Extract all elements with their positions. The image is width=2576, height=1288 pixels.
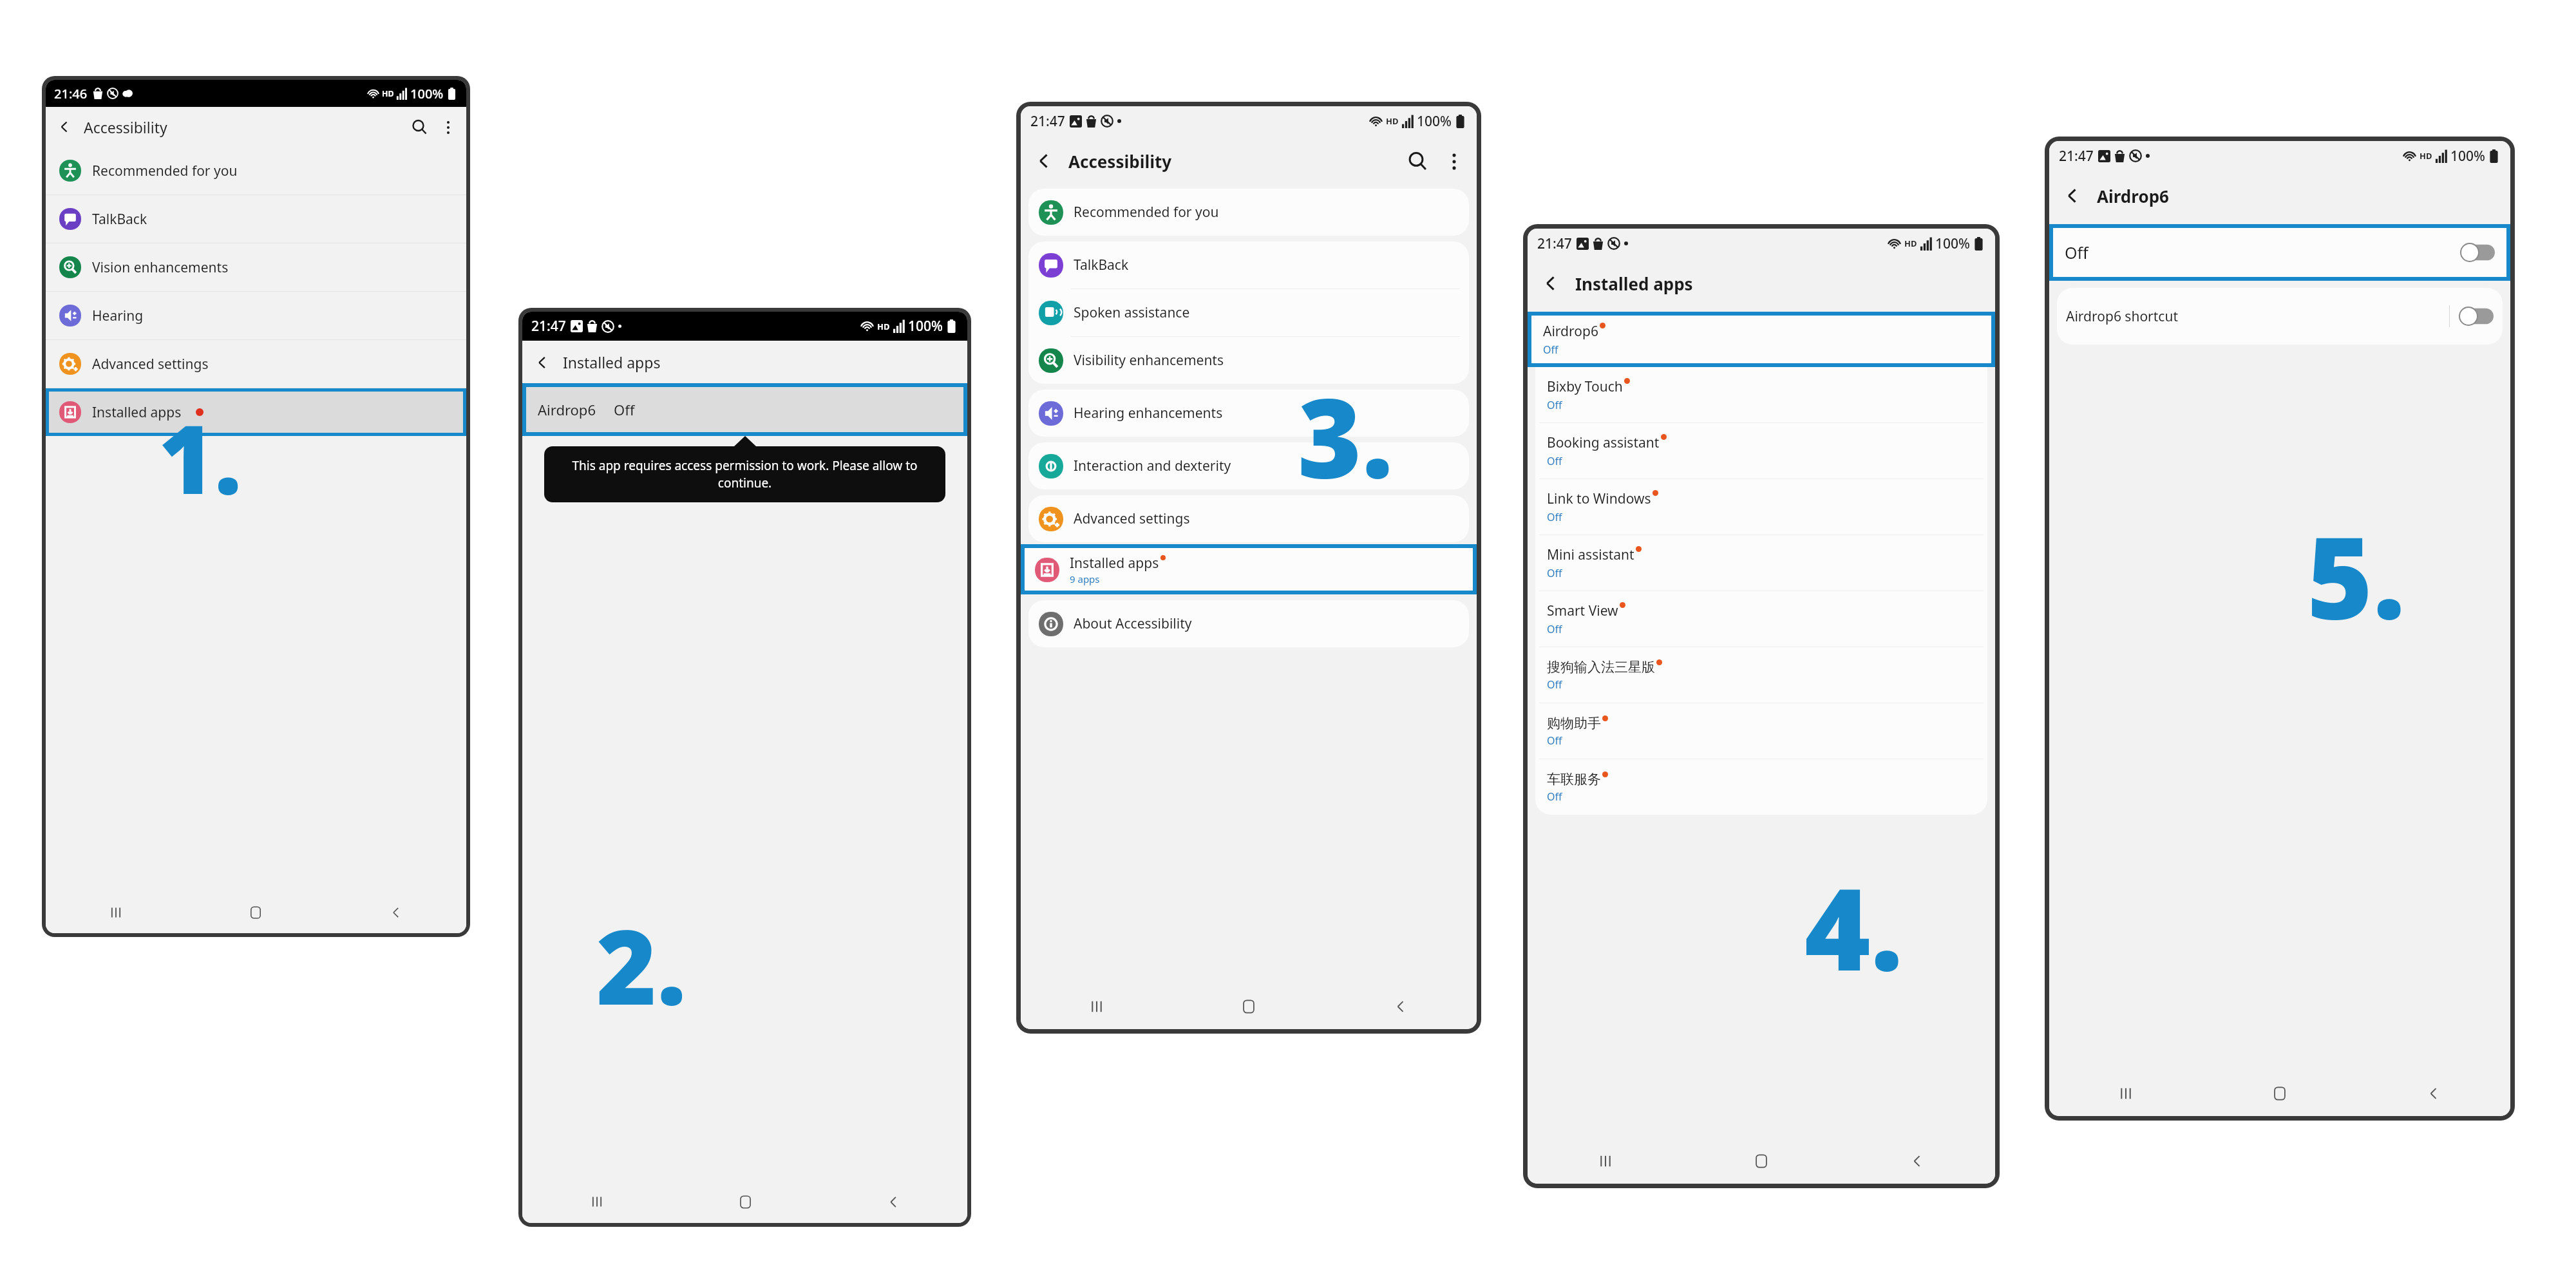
staticText: Off: [1543, 343, 1558, 357]
button[interactable]: Home: [1173, 984, 1325, 1029]
button[interactable]: More options: [1439, 146, 1469, 176]
button[interactable]: 车联服务: [1535, 759, 1987, 815]
button[interactable]: Recents: [2049, 1071, 2202, 1116]
button[interactable]: Recommended for you: [46, 147, 466, 194]
staticText: 100%: [1935, 234, 1970, 253]
button[interactable]: Airdrop6: [1531, 316, 1991, 363]
staticText: Off: [1547, 566, 1562, 580]
button[interactable]: Hearing enhancements: [1028, 390, 1469, 437]
button[interactable]: Toggle: [2459, 307, 2494, 326]
button[interactable]: Navigate up: [52, 115, 77, 139]
button[interactable]: Recents: [1021, 984, 1173, 1029]
staticText: 5.: [2307, 498, 2406, 652]
button[interactable]: Search: [1403, 146, 1433, 176]
button[interactable]: Navigate up: [2057, 180, 2088, 211]
staticText: Installed apps: [1575, 272, 1693, 295]
button[interactable]: Hearing: [46, 292, 466, 339]
button[interactable]: Installed apps: [1025, 548, 1473, 591]
staticText: 21:47: [1030, 112, 1065, 131]
staticText: 100%: [908, 317, 943, 336]
button[interactable]: Recents: [46, 892, 185, 933]
staticText: Recommended for you: [92, 162, 238, 180]
staticText: Off: [1547, 790, 1562, 804]
button[interactable]: Back: [2356, 1071, 2510, 1116]
button[interactable]: Vision enhancements: [46, 243, 466, 291]
staticText: 21:46: [54, 85, 88, 102]
staticText: 100%: [2450, 147, 2485, 166]
staticText: 100%: [1417, 112, 1452, 131]
staticText: Installed apps: [563, 352, 661, 372]
button[interactable]: 搜狗输入法三星版: [1535, 647, 1987, 703]
button[interactable]: TalkBack: [1028, 241, 1469, 289]
staticText: HD: [1386, 115, 1399, 127]
staticText: 9 apps: [1070, 573, 1100, 585]
staticText: 购物助手: [1547, 715, 1601, 732]
button[interactable]: Navigate up: [1028, 146, 1059, 176]
button[interactable]: Link to Windows: [1535, 479, 1987, 535]
staticText: Advanced settings: [92, 355, 209, 374]
button[interactable]: 购物助手: [1535, 703, 1987, 759]
button[interactable]: TalkBack: [46, 195, 466, 243]
staticText: TalkBack: [1074, 256, 1129, 274]
staticText: Accessibility: [1068, 150, 1172, 173]
button[interactable]: Home: [1683, 1139, 1839, 1184]
staticText: Off: [1547, 510, 1562, 524]
staticText: Booking assistant: [1547, 433, 1660, 452]
button[interactable]: Mini assistant: [1535, 535, 1987, 591]
staticText: Accessibility: [84, 117, 167, 137]
button[interactable]: Search: [408, 115, 431, 139]
staticText: Advanced settings: [1074, 509, 1190, 528]
staticText: This app requires access permission to w…: [557, 457, 933, 491]
button[interactable]: Recents: [522, 1180, 671, 1223]
staticText: 3.: [1298, 361, 1394, 510]
button[interactable]: Advanced settings: [46, 340, 466, 388]
button[interactable]: Spoken assistance: [1028, 289, 1469, 336]
staticText: About Accessibility: [1074, 614, 1192, 633]
staticText: Interaction and dexterity: [1074, 457, 1231, 475]
staticText: Off: [1547, 677, 1562, 692]
button[interactable]: Back: [819, 1180, 967, 1223]
staticText: Bixby Touch: [1547, 377, 1623, 396]
staticText: 2.: [596, 895, 687, 1035]
button[interactable]: Smart View: [1535, 591, 1987, 647]
button[interactable]: Interaction and dexterity: [1028, 442, 1469, 489]
staticText: Vision enhancements: [92, 258, 229, 277]
button[interactable]: Recents: [1528, 1139, 1683, 1184]
button[interactable]: Visibility enhancements: [1028, 337, 1469, 384]
staticText: Spoken assistance: [1074, 303, 1190, 322]
staticText: HD: [1904, 238, 1917, 249]
button[interactable]: Back: [1839, 1139, 1995, 1184]
staticText: HD: [2420, 150, 2432, 162]
staticText: HD: [877, 321, 890, 332]
staticText: 21:47: [1537, 234, 1572, 253]
button[interactable]: Booking assistant: [1535, 423, 1987, 478]
button[interactable]: Advanced settings: [1028, 495, 1469, 542]
button[interactable]: Installed apps: [49, 392, 463, 433]
button[interactable]: Toggle: [2460, 243, 2495, 262]
staticText: 21:47: [531, 317, 566, 336]
button[interactable]: About Accessibility: [1028, 600, 1469, 647]
staticText: TalkBack: [92, 210, 147, 229]
button[interactable]: Navigate up: [529, 349, 555, 375]
staticText: Off: [1547, 454, 1562, 468]
staticText: Mini assistant: [1547, 545, 1634, 564]
button[interactable]: Off: [2053, 228, 2506, 277]
button[interactable]: Home: [2202, 1071, 2356, 1116]
button[interactable]: Back: [1325, 984, 1477, 1029]
staticText: Off: [1547, 622, 1562, 636]
staticText: 搜狗输入法三星版: [1547, 659, 1655, 676]
button[interactable]: Bixby Touch: [1535, 367, 1987, 422]
staticText: Hearing: [92, 307, 144, 325]
button[interactable]: Back: [326, 892, 466, 933]
button[interactable]: Navigate up: [1535, 268, 1566, 299]
staticText: HD: [382, 88, 394, 99]
button[interactable]: More options: [436, 115, 460, 139]
button[interactable]: Recommended for you: [1028, 189, 1469, 236]
button[interactable]: Airdrop6 shortcut: [2057, 288, 2503, 345]
staticText: 1.: [158, 392, 242, 522]
button[interactable]: Home: [185, 892, 326, 933]
staticText: 车联服务: [1547, 771, 1601, 788]
button[interactable]: Airdrop6: [526, 387, 963, 432]
staticText: Recommended for you: [1074, 203, 1219, 222]
button[interactable]: Home: [671, 1180, 819, 1223]
